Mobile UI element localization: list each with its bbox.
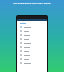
button[interactable]: [17, 33, 47, 37]
button[interactable]: [17, 41, 47, 45]
button[interactable]: [17, 29, 47, 33]
staticText: Get notifications from your phone: [1, 2, 63, 5]
button[interactable]: [17, 49, 47, 53]
button[interactable]: [17, 25, 47, 29]
button[interactable]: [17, 53, 47, 57]
button[interactable]: [17, 45, 47, 49]
button[interactable]: [17, 37, 47, 41]
button[interactable]: [17, 57, 47, 61]
button[interactable]: [17, 61, 47, 65]
